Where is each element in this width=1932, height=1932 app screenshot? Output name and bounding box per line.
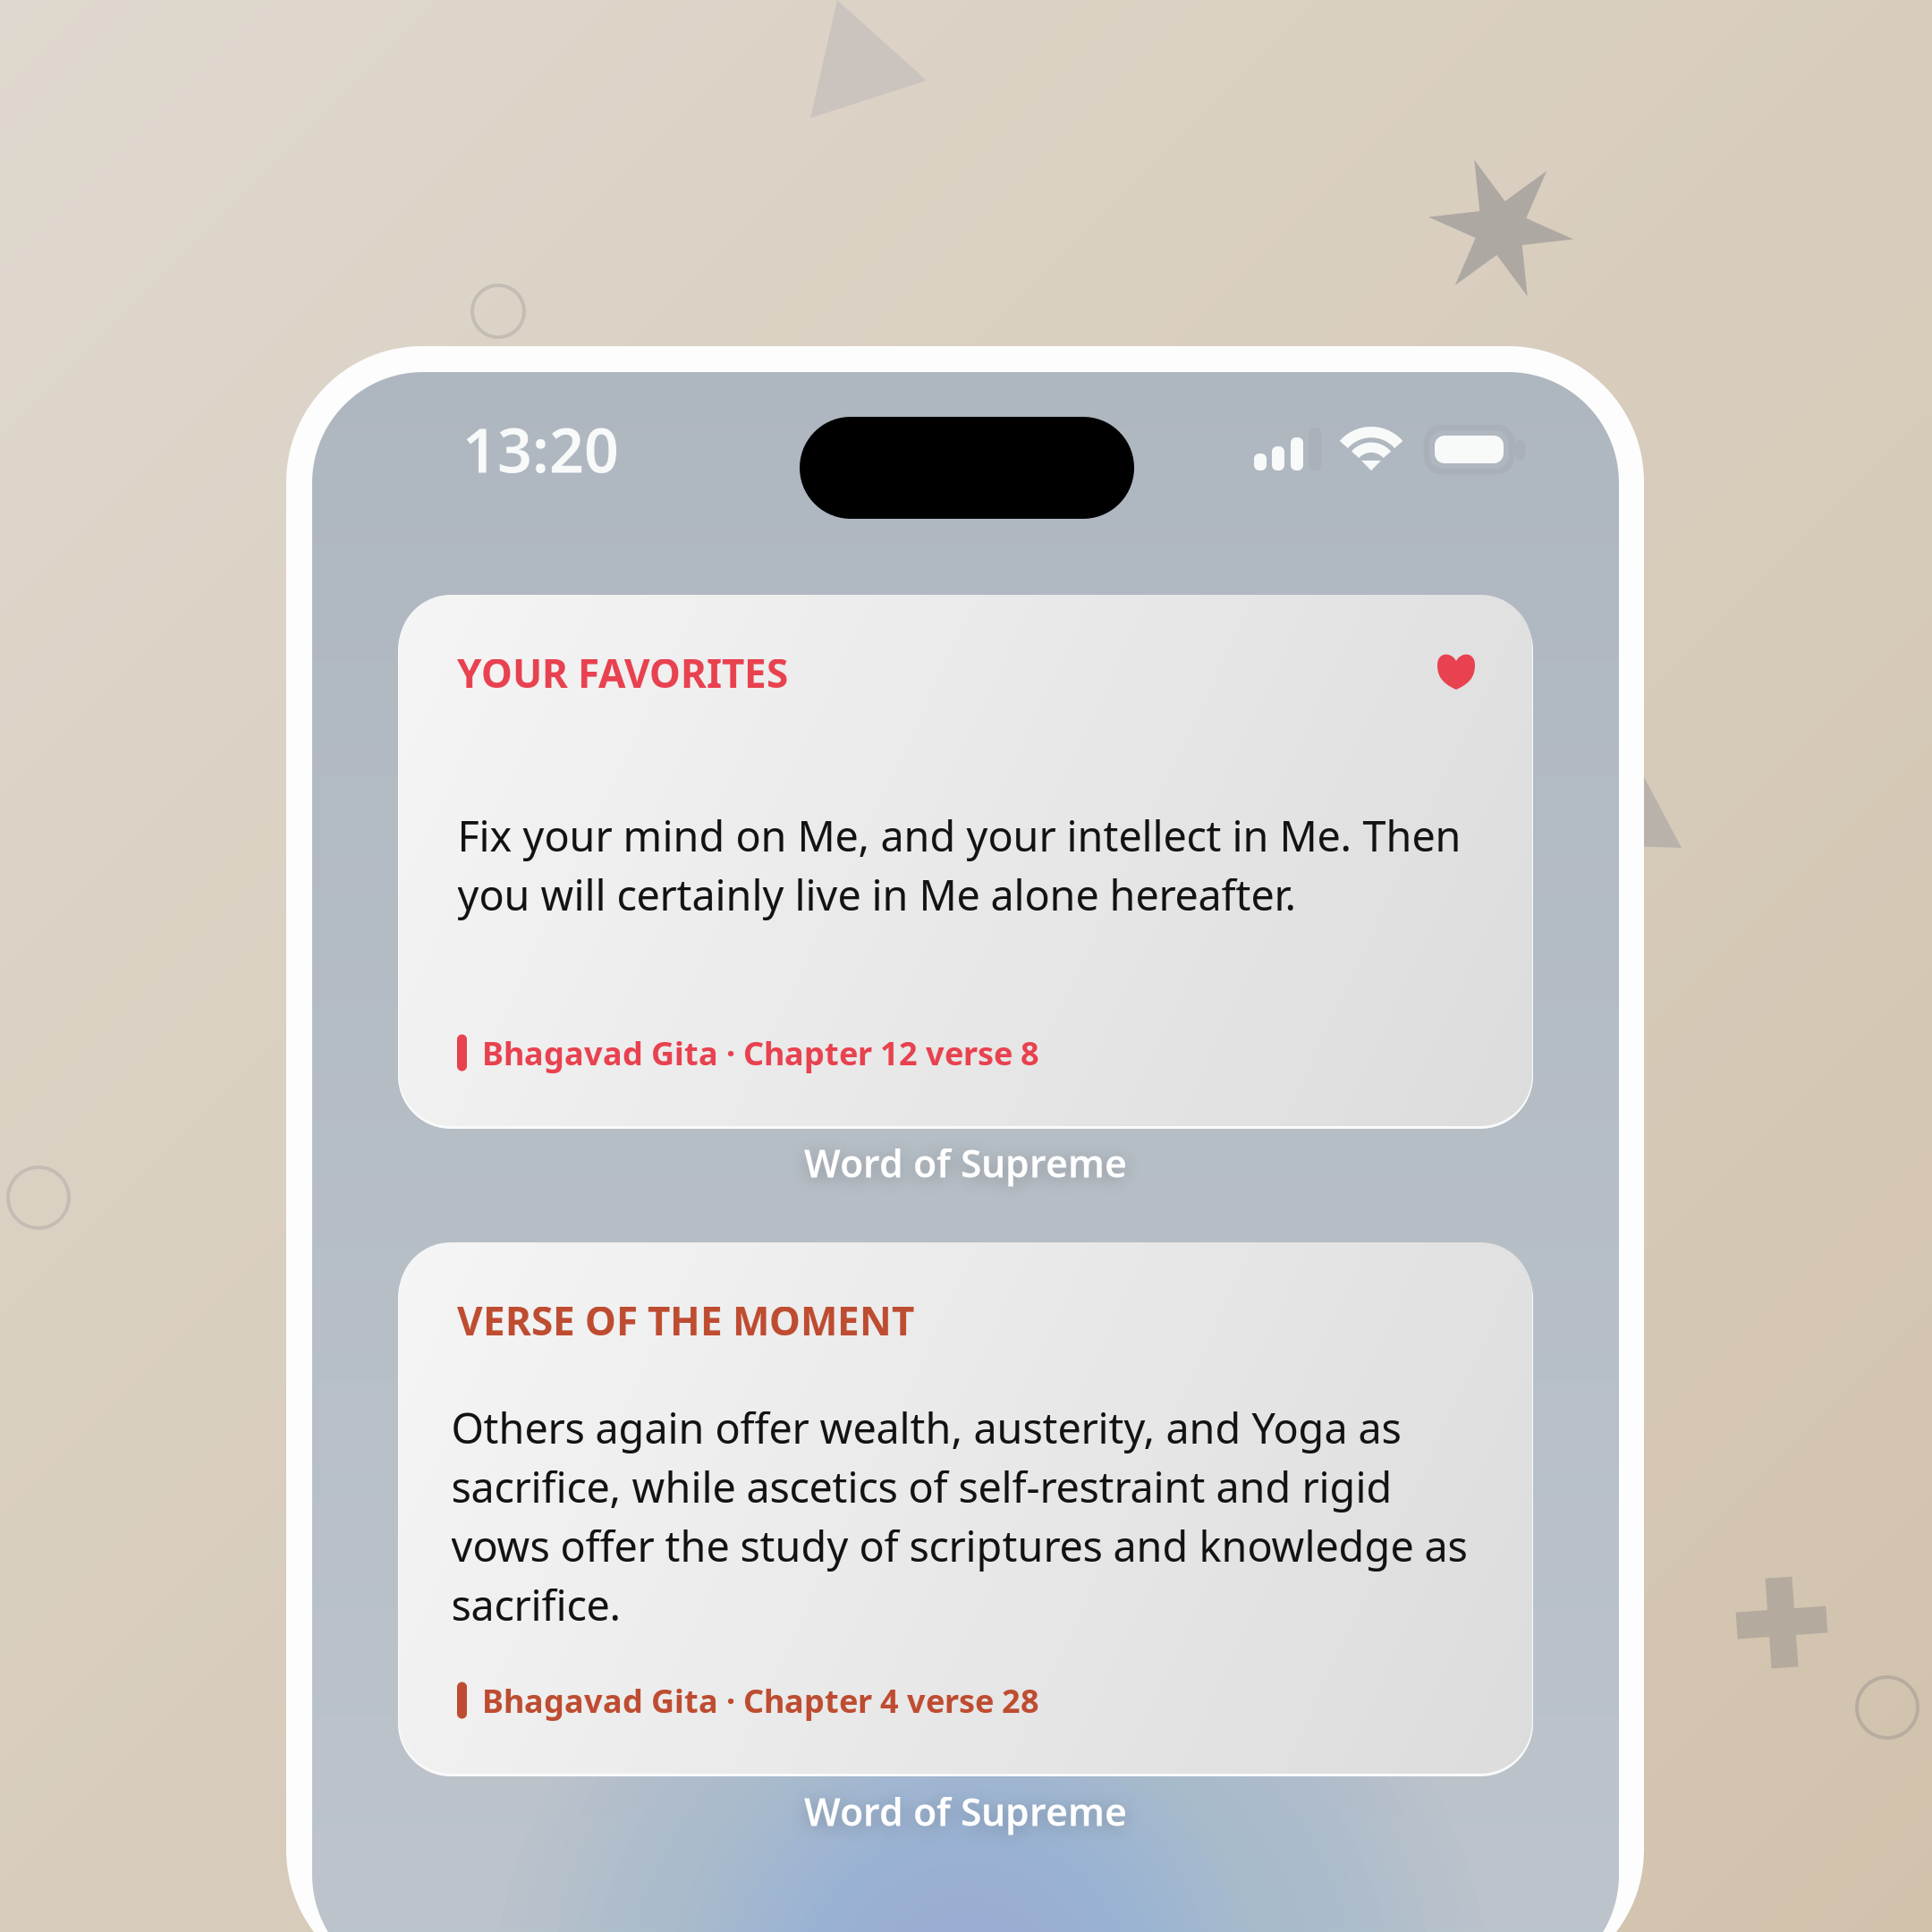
staticText: Fix your mind on Me, and your intellect … (458, 808, 1461, 922)
staticText: Word of Supreme (804, 1786, 1127, 1837)
staticText: VERSE OF THE MOMENT (457, 1294, 914, 1346)
staticText: Word of Supreme (804, 1137, 1127, 1188)
staticText: 13:20 (462, 409, 619, 489)
staticText: Others again offer wealth, austerity, an… (451, 1400, 1467, 1632)
button[interactable]: YOUR FAVORITES (400, 595, 1533, 1126)
button[interactable]: Remove from favorites (1437, 655, 1475, 690)
staticText: Bhagavad Gita · Chapter 4 verse 28 (482, 1679, 1039, 1722)
button[interactable]: VERSE OF THE MOMENT (400, 1242, 1533, 1774)
staticText: YOUR FAVORITES (457, 647, 788, 699)
staticText: Bhagavad Gita · Chapter 12 verse 8 (482, 1031, 1039, 1074)
